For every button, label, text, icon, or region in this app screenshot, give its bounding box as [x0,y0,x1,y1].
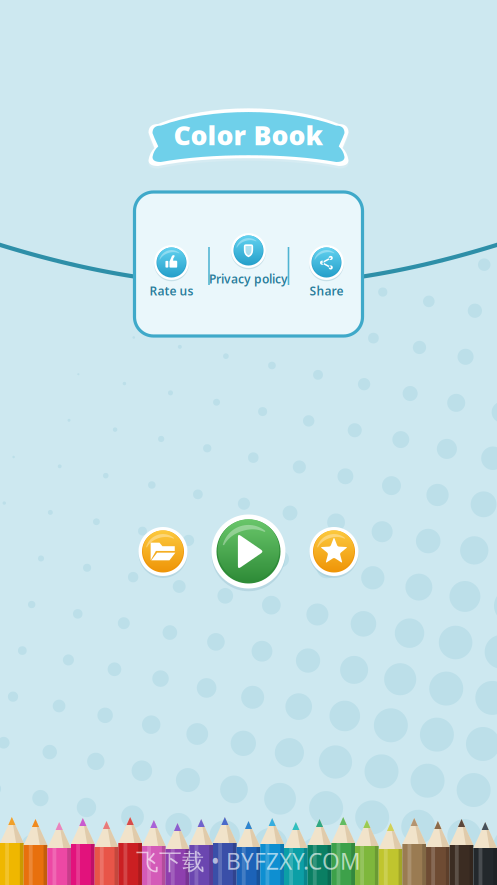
button[interactable]: Share [309,245,344,280]
staticText: Share [309,283,343,299]
button[interactable]: Privacy policy [231,233,266,268]
staticText: Color Book [173,117,323,153]
button[interactable]: Play [211,514,285,588]
staticText: Privacy policy [209,271,288,287]
button[interactable]: My drawings [138,527,187,576]
button[interactable]: Share [274,245,378,299]
button[interactable]: Rate us [119,245,223,299]
button[interactable]: Privacy policy [196,233,300,287]
staticText: Rate us [149,283,193,299]
button[interactable]: Favourites [309,527,358,576]
staticText: 飞下载 • BYFZXY.COM [136,846,361,876]
button[interactable]: Rate us [154,245,189,280]
